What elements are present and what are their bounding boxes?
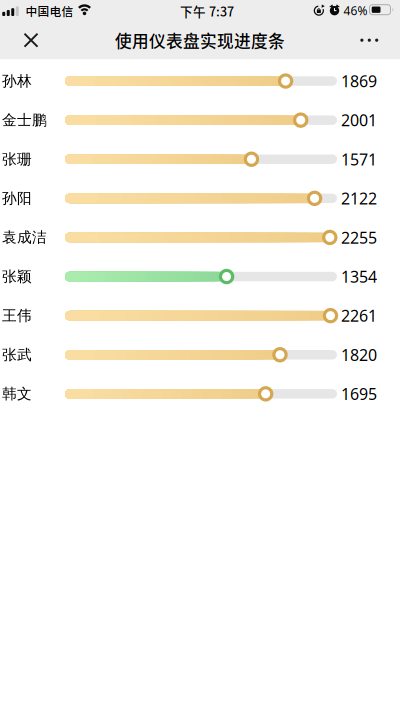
button[interactable]: Close [16,25,46,55]
staticText: 金士鹏 [2,111,47,129]
staticText: 孙阳 [2,189,32,207]
staticText: 2122 [341,188,377,209]
staticText: 中国电信 [25,2,73,19]
staticText: 1820 [341,344,377,365]
staticText: 下午 7:37 [180,2,234,20]
staticText: 2255 [341,227,377,248]
staticText: 张武 [2,346,32,364]
staticText: 1571 [341,149,377,170]
staticText: 孙林 [2,72,32,90]
staticText: 张珊 [2,150,32,168]
staticText: 王伟 [2,307,32,325]
staticText: 2001 [341,109,377,131]
staticText: 使用仪表盘实现进度条 [115,28,285,52]
staticText: 1869 [341,70,377,92]
staticText: 1354 [341,266,377,287]
staticText: 1695 [341,383,377,404]
staticText: 张颖 [2,267,32,285]
staticText: 46% [343,3,367,19]
staticText: 袁成洁 [2,228,47,246]
button[interactable]: More [352,31,386,50]
staticText: 韩文 [2,385,32,403]
staticText: 2261 [341,305,377,326]
